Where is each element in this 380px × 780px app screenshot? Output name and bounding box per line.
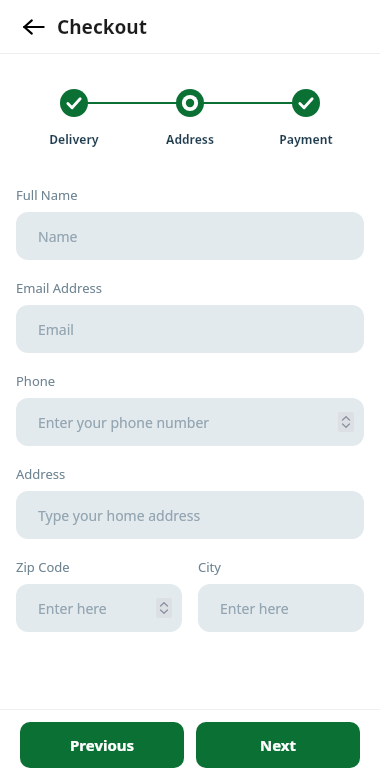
button[interactable]: Address <box>132 88 248 147</box>
button[interactable]: Type your home address <box>16 491 364 539</box>
button[interactable]: Back <box>14 7 54 47</box>
staticText: Email <box>38 320 354 339</box>
button[interactable]: Enter here <box>16 584 182 632</box>
staticText: Checkout <box>57 14 147 40</box>
staticText: Enter here <box>220 599 354 618</box>
button[interactable]: Previous <box>20 722 184 768</box>
staticText: Payment <box>248 131 364 147</box>
staticText: Enter here <box>38 599 156 618</box>
staticText: Next <box>260 735 297 755</box>
staticText: Name <box>38 227 354 246</box>
button[interactable]: Delivery <box>16 88 132 147</box>
staticText: Zip Code <box>16 558 70 576</box>
staticText: Address <box>132 131 248 147</box>
staticText: Address <box>16 465 66 483</box>
button[interactable]: Email <box>16 305 364 353</box>
staticText: Type your home address <box>38 506 354 525</box>
staticText: Full Name <box>16 186 78 204</box>
button[interactable]: Increase or decrease value <box>156 598 172 618</box>
button[interactable]: Enter here <box>198 584 364 632</box>
button[interactable]: Increase or decrease value <box>338 412 354 432</box>
button[interactable]: Payment <box>248 88 364 147</box>
staticText: Delivery <box>16 131 132 147</box>
staticText: Phone <box>16 372 56 390</box>
staticText: Email Address <box>16 279 102 297</box>
staticText: Previous <box>70 735 135 755</box>
staticText: City <box>198 558 221 576</box>
button[interactable]: Next <box>196 722 360 768</box>
staticText: Enter your phone number <box>38 413 338 432</box>
button[interactable]: Name <box>16 212 364 260</box>
button[interactable]: Enter your phone number <box>16 398 364 446</box>
